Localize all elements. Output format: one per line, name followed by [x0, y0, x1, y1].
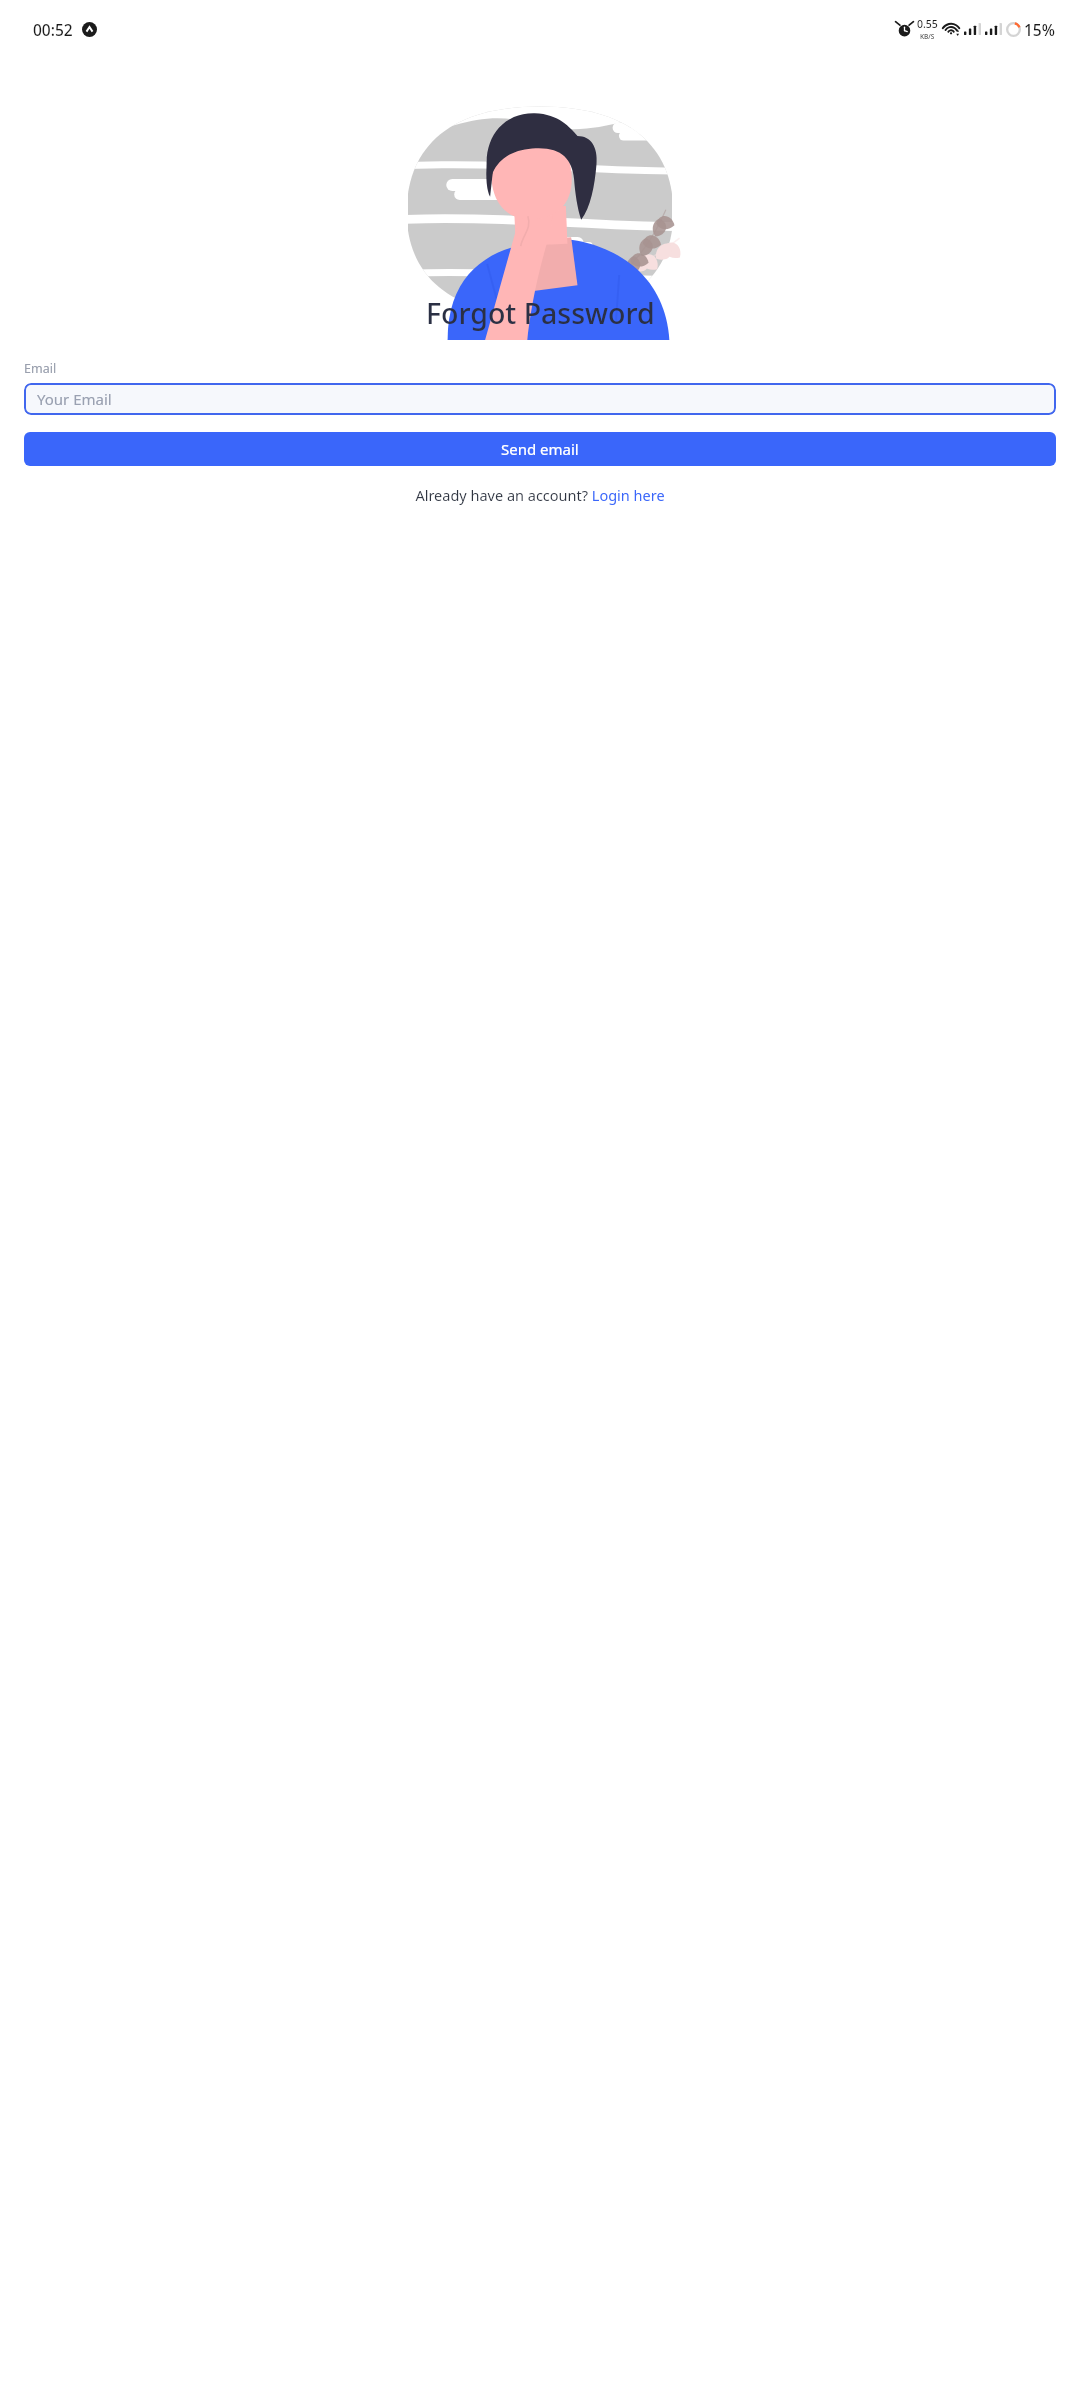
- staticText: Email: [24, 360, 57, 377]
- staticText: Already have an account? Login here: [415, 485, 665, 505]
- other: Alarm: [897, 22, 912, 37]
- staticText: 0.55: [917, 17, 938, 31]
- other: SIM 1 signal: [964, 23, 981, 35]
- other: SIM 2 signal: [985, 23, 1002, 35]
- other: Wi-Fi: [944, 21, 960, 37]
- staticText: 15%: [1024, 19, 1055, 40]
- button[interactable]: Send email: [24, 432, 1056, 466]
- other: Battery 15 percent: [1006, 22, 1021, 37]
- staticText: Send email: [501, 439, 579, 459]
- staticText: Forgot Password: [426, 294, 655, 333]
- staticText: KB/S: [920, 32, 935, 41]
- button[interactable]: Your Email: [24, 383, 1056, 415]
- button[interactable]: Already have an account? Login here: [24, 485, 1056, 505]
- staticText: Your Email: [37, 389, 112, 409]
- other: App badge: [82, 22, 97, 37]
- staticText: 00:52: [33, 19, 73, 40]
